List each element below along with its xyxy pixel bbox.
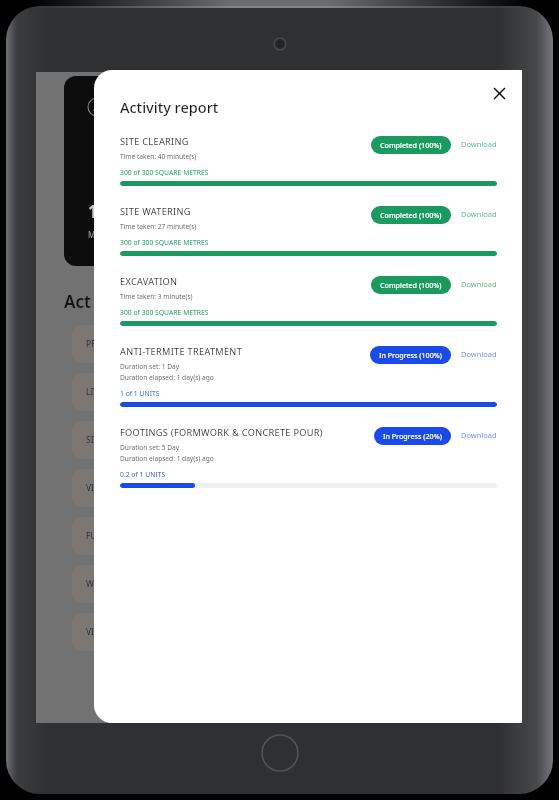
button[interactable]: Completed (100%) (371, 136, 451, 154)
staticText: Completed (100%) (380, 280, 442, 290)
staticText: Download (461, 430, 497, 440)
button[interactable]: Completed (100%) (371, 206, 451, 224)
staticText: PRO (86, 338, 104, 350)
button[interactable]: EXCAVATION (120, 275, 497, 326)
button[interactable]: FOOTINGS (FORMWORK & CONCRETE POUR) (120, 426, 497, 488)
staticText: In Progress (100%) (379, 350, 442, 360)
button[interactable]: Download (461, 139, 497, 149)
staticText: Time taken: 27 minute(s) (120, 222, 197, 231)
staticText: Duration set: 1 Day (120, 362, 180, 371)
staticText: Duration set: 5 Day (120, 443, 180, 452)
button[interactable]: VIE (72, 613, 502, 651)
button[interactable]: SITE (72, 421, 502, 459)
staticText: Activity report (120, 97, 219, 117)
staticText: Completed (100%) (380, 210, 442, 220)
staticText: WIT (86, 578, 102, 590)
staticText: FUN (86, 530, 104, 542)
staticText: ANTI-TERMITE TREATMENT (120, 345, 243, 358)
button[interactable]: LIVE (72, 373, 502, 411)
staticText: LIVE (86, 386, 104, 398)
staticText: In Progress (20%) (383, 431, 442, 441)
staticText: Duration elapsed: 1 day(s) ago (120, 373, 214, 382)
staticText: Download (461, 139, 497, 149)
button[interactable]: VIE (72, 469, 502, 507)
staticText: Act (64, 290, 91, 313)
button[interactable]: Close (484, 78, 514, 108)
button[interactable]: Download (461, 430, 497, 440)
staticText: Download (461, 349, 497, 359)
staticText: SITE (86, 434, 104, 446)
button[interactable]: Download (461, 349, 497, 359)
button[interactable]: In Progress (100%) (370, 346, 451, 364)
staticText: Time taken: 3 minute(s) (120, 292, 193, 301)
staticText: EXCAVATION (120, 275, 178, 288)
staticText: Time taken: 40 minute(s) (120, 152, 197, 161)
button[interactable]: WIT (72, 565, 502, 603)
staticText: 0.2 of 1 UNITS (120, 470, 166, 479)
button[interactable]: ANTI-TERMITE TREATMENT (120, 345, 497, 407)
staticText: VIE (86, 626, 99, 638)
button[interactable]: Completed (100%) (371, 276, 451, 294)
staticText: SITE WATERING (120, 205, 191, 218)
button[interactable]: SITE CLEARING (120, 135, 497, 186)
staticText: Download (461, 209, 497, 219)
button[interactable]: Download (461, 279, 497, 289)
button[interactable]: Download (461, 209, 497, 219)
staticText: 1 of 1 UNITS (120, 389, 160, 398)
staticText: VIE (86, 482, 99, 494)
staticText: FOOTINGS (FORMWORK & CONCRETE POUR) (120, 426, 323, 439)
staticText: Duration elapsed: 1 day(s) ago (120, 454, 214, 463)
button[interactable]: FUN (72, 517, 502, 555)
staticText: 300 of 300 SQUARE METRES (120, 308, 209, 317)
staticText: Mile (88, 229, 104, 240)
button[interactable]: PRO (72, 325, 502, 363)
button[interactable]: SITE WATERING (120, 205, 497, 256)
staticText: 10 (88, 200, 108, 223)
staticText: Download (461, 279, 497, 289)
button[interactable]: In Progress (20%) (374, 427, 451, 445)
staticText: 300 of 300 SQUARE METRES (120, 238, 209, 247)
staticText: SITE CLEARING (120, 135, 189, 148)
staticText: Completed (100%) (380, 140, 442, 150)
staticText: 300 of 300 SQUARE METRES (120, 168, 209, 177)
